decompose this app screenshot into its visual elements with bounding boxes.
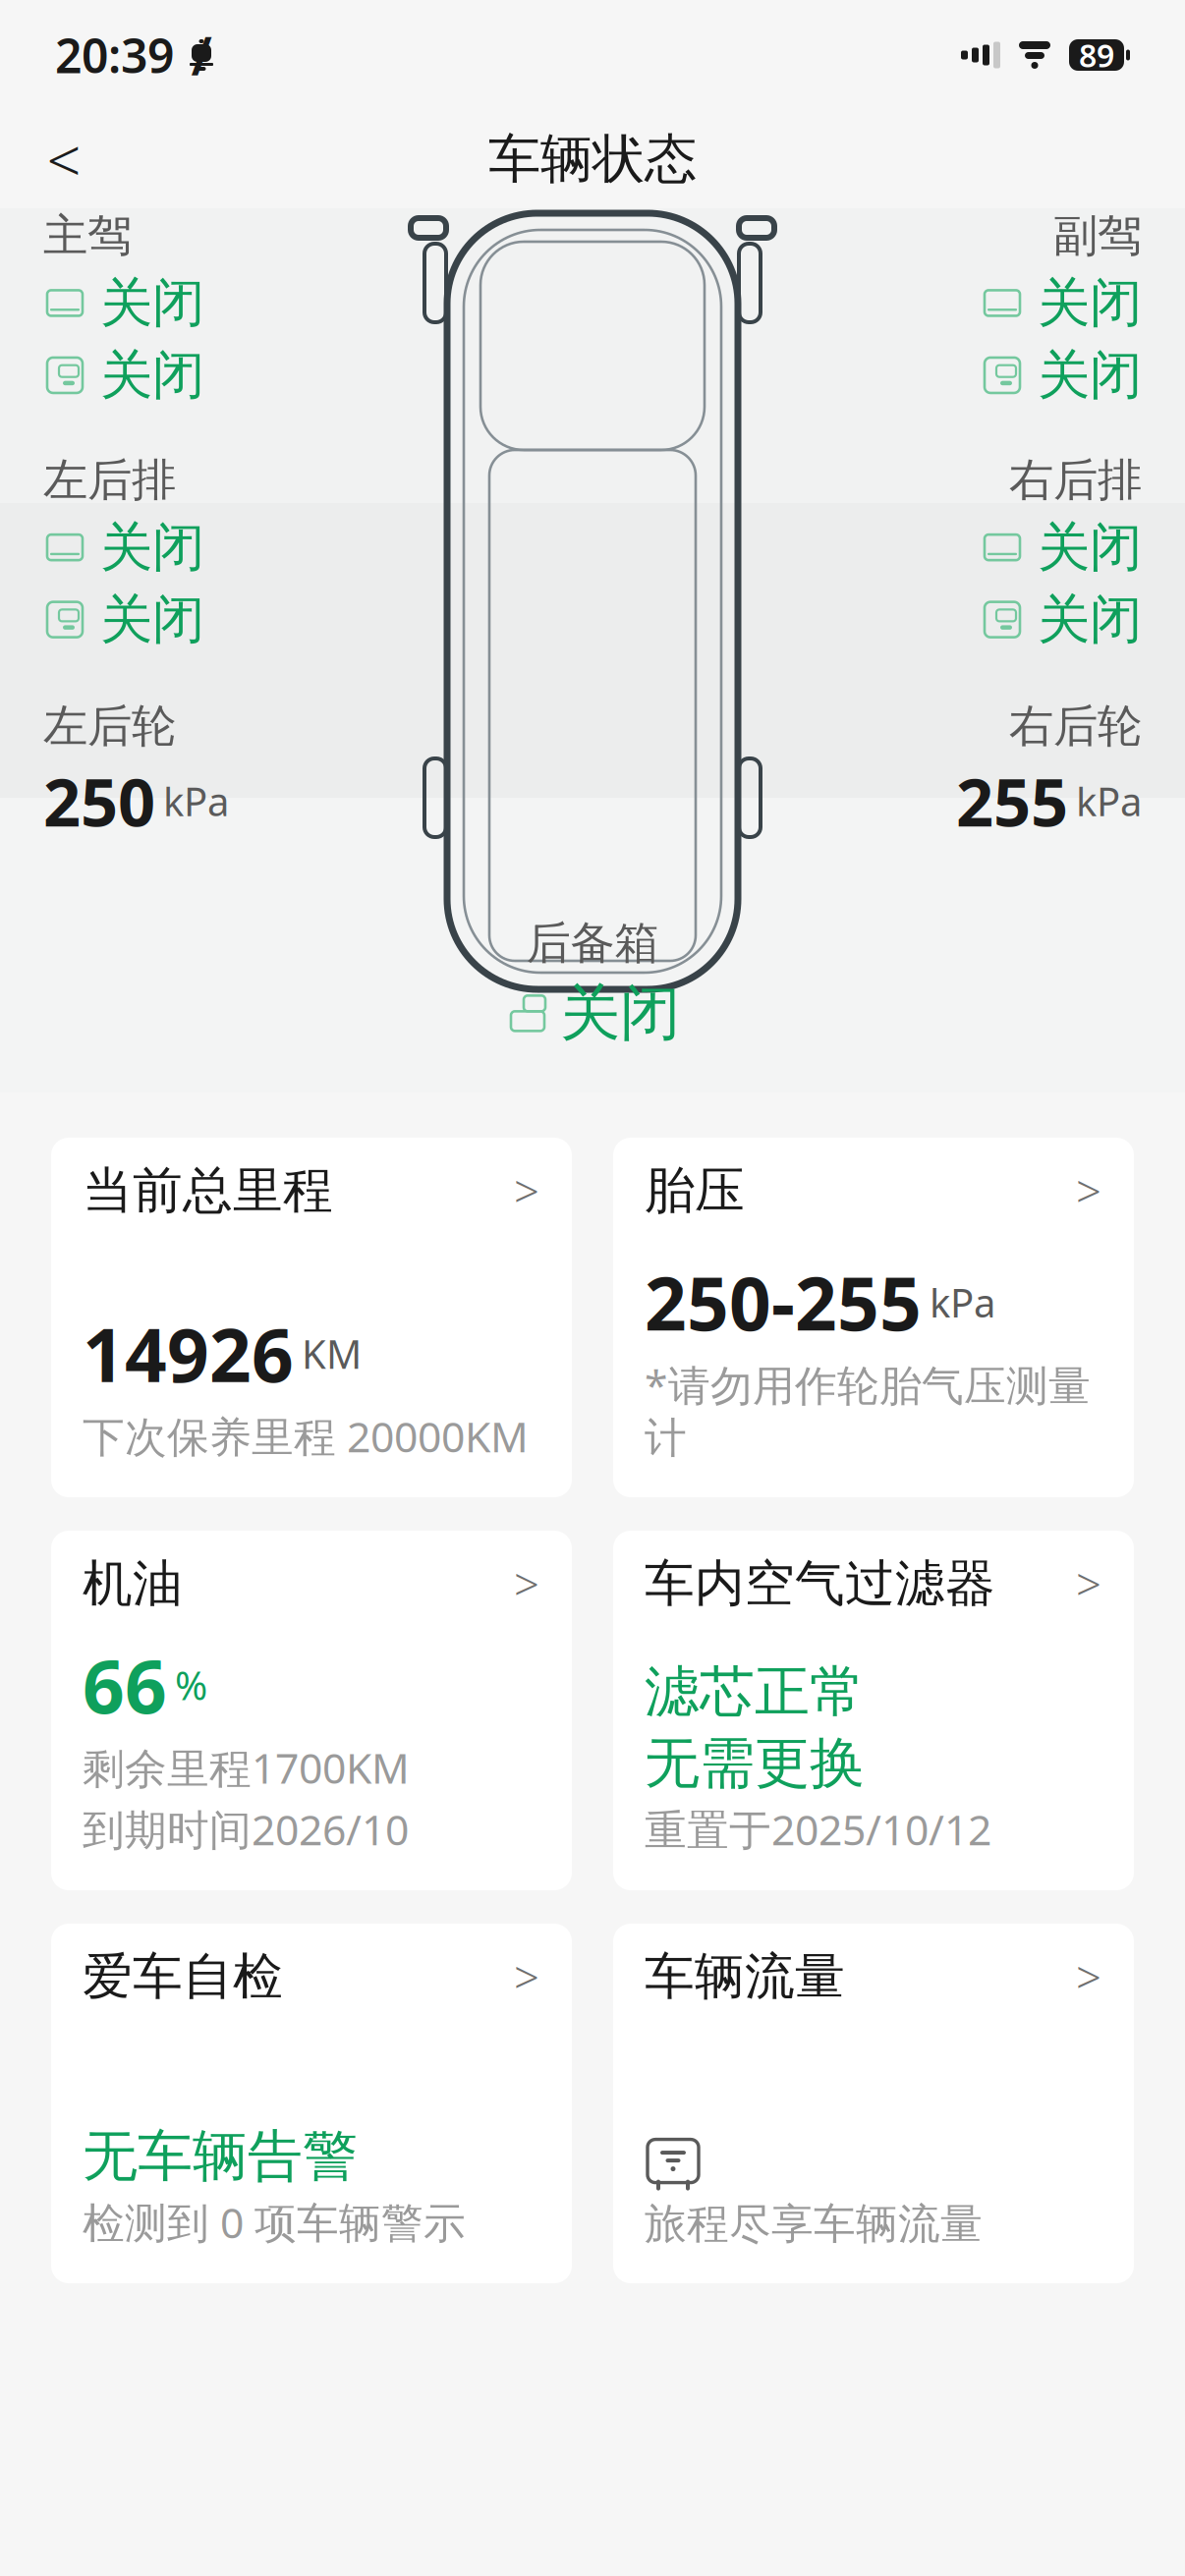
staticText: 主驾 <box>43 208 132 263</box>
staticText: 关闭 <box>100 515 204 580</box>
staticText: 重置于2025/10/12 <box>645 1801 991 1857</box>
staticText: 关闭 <box>1038 343 1142 407</box>
button[interactable]: 车内空气过滤器 <box>613 1531 1134 1890</box>
staticText: 关闭 <box>100 587 204 652</box>
staticText: % <box>175 1659 207 1711</box>
staticText: 胎压 <box>645 1160 745 1221</box>
staticText: 爱车自检 <box>83 1946 283 2007</box>
staticText: 14926 <box>83 1305 294 1402</box>
staticText: 66 <box>83 1636 167 1734</box>
staticText: > <box>1076 1554 1101 1613</box>
button[interactable]: 胎压 <box>613 1138 1134 1497</box>
staticText: 关闭 <box>560 976 680 1050</box>
staticText: 检测到 0 项车辆警示 <box>83 2194 466 2250</box>
staticText: 机油 <box>83 1553 183 1614</box>
staticText: 250 <box>43 758 155 845</box>
staticText: > <box>514 1554 539 1613</box>
staticText: > <box>514 1161 539 1220</box>
staticText: 20:39 <box>55 24 174 86</box>
staticText: 剩余里程1700KM <box>83 1740 410 1795</box>
button[interactable]: 返回 <box>22 117 106 201</box>
staticText: 副驾 <box>1053 208 1142 263</box>
button[interactable]: 机油 <box>51 1531 572 1890</box>
staticText: / <box>191 20 212 90</box>
button[interactable]: 爱车自检 <box>51 1924 572 2283</box>
staticText: 左后轮 <box>43 699 176 754</box>
staticText: > <box>514 1947 539 2006</box>
staticText: *请勿用作轮胎气压测量计 <box>645 1357 1091 1464</box>
staticText: 无车辆告警 <box>83 2123 358 2190</box>
staticText: > <box>1076 1161 1101 1220</box>
staticText: 后备箱 <box>526 916 659 970</box>
staticText: 250-255 <box>645 1253 922 1351</box>
staticText: > <box>1076 1947 1101 2006</box>
staticText: 关闭 <box>100 271 204 335</box>
staticText: 右后轮 <box>1009 699 1142 754</box>
button[interactable]: 当前总里程 <box>51 1138 572 1497</box>
staticText: 下次保养里程 20000KM <box>83 1408 529 1464</box>
staticText: 车辆流量 <box>645 1946 845 2007</box>
staticText: 滤芯正常 <box>645 1658 865 1726</box>
staticText: 当前总里程 <box>83 1160 333 1221</box>
staticText: 关闭 <box>100 343 204 407</box>
staticText: 关闭 <box>1038 515 1142 580</box>
staticText: kPa <box>163 775 229 827</box>
staticText: kPa <box>930 1276 995 1328</box>
staticText: 无需更换 <box>645 1730 865 1797</box>
staticText: < <box>47 119 81 199</box>
staticText: 车辆状态 <box>488 127 697 191</box>
staticText: KM <box>302 1327 362 1380</box>
staticText: 255 <box>956 758 1068 845</box>
staticText: 到期时间2026/10 <box>83 1801 409 1857</box>
staticText: 89 <box>1079 34 1114 76</box>
staticText: 车内空气过滤器 <box>645 1553 995 1614</box>
staticText: 旅程尽享车辆流量 <box>645 2198 983 2250</box>
staticText: 左后排 <box>43 453 176 507</box>
staticText: 右后排 <box>1009 453 1142 507</box>
button[interactable]: 车辆流量 <box>613 1924 1134 2283</box>
staticText: 关闭 <box>1038 587 1142 652</box>
staticText: kPa <box>1076 775 1142 827</box>
staticText: 关闭 <box>1038 271 1142 335</box>
